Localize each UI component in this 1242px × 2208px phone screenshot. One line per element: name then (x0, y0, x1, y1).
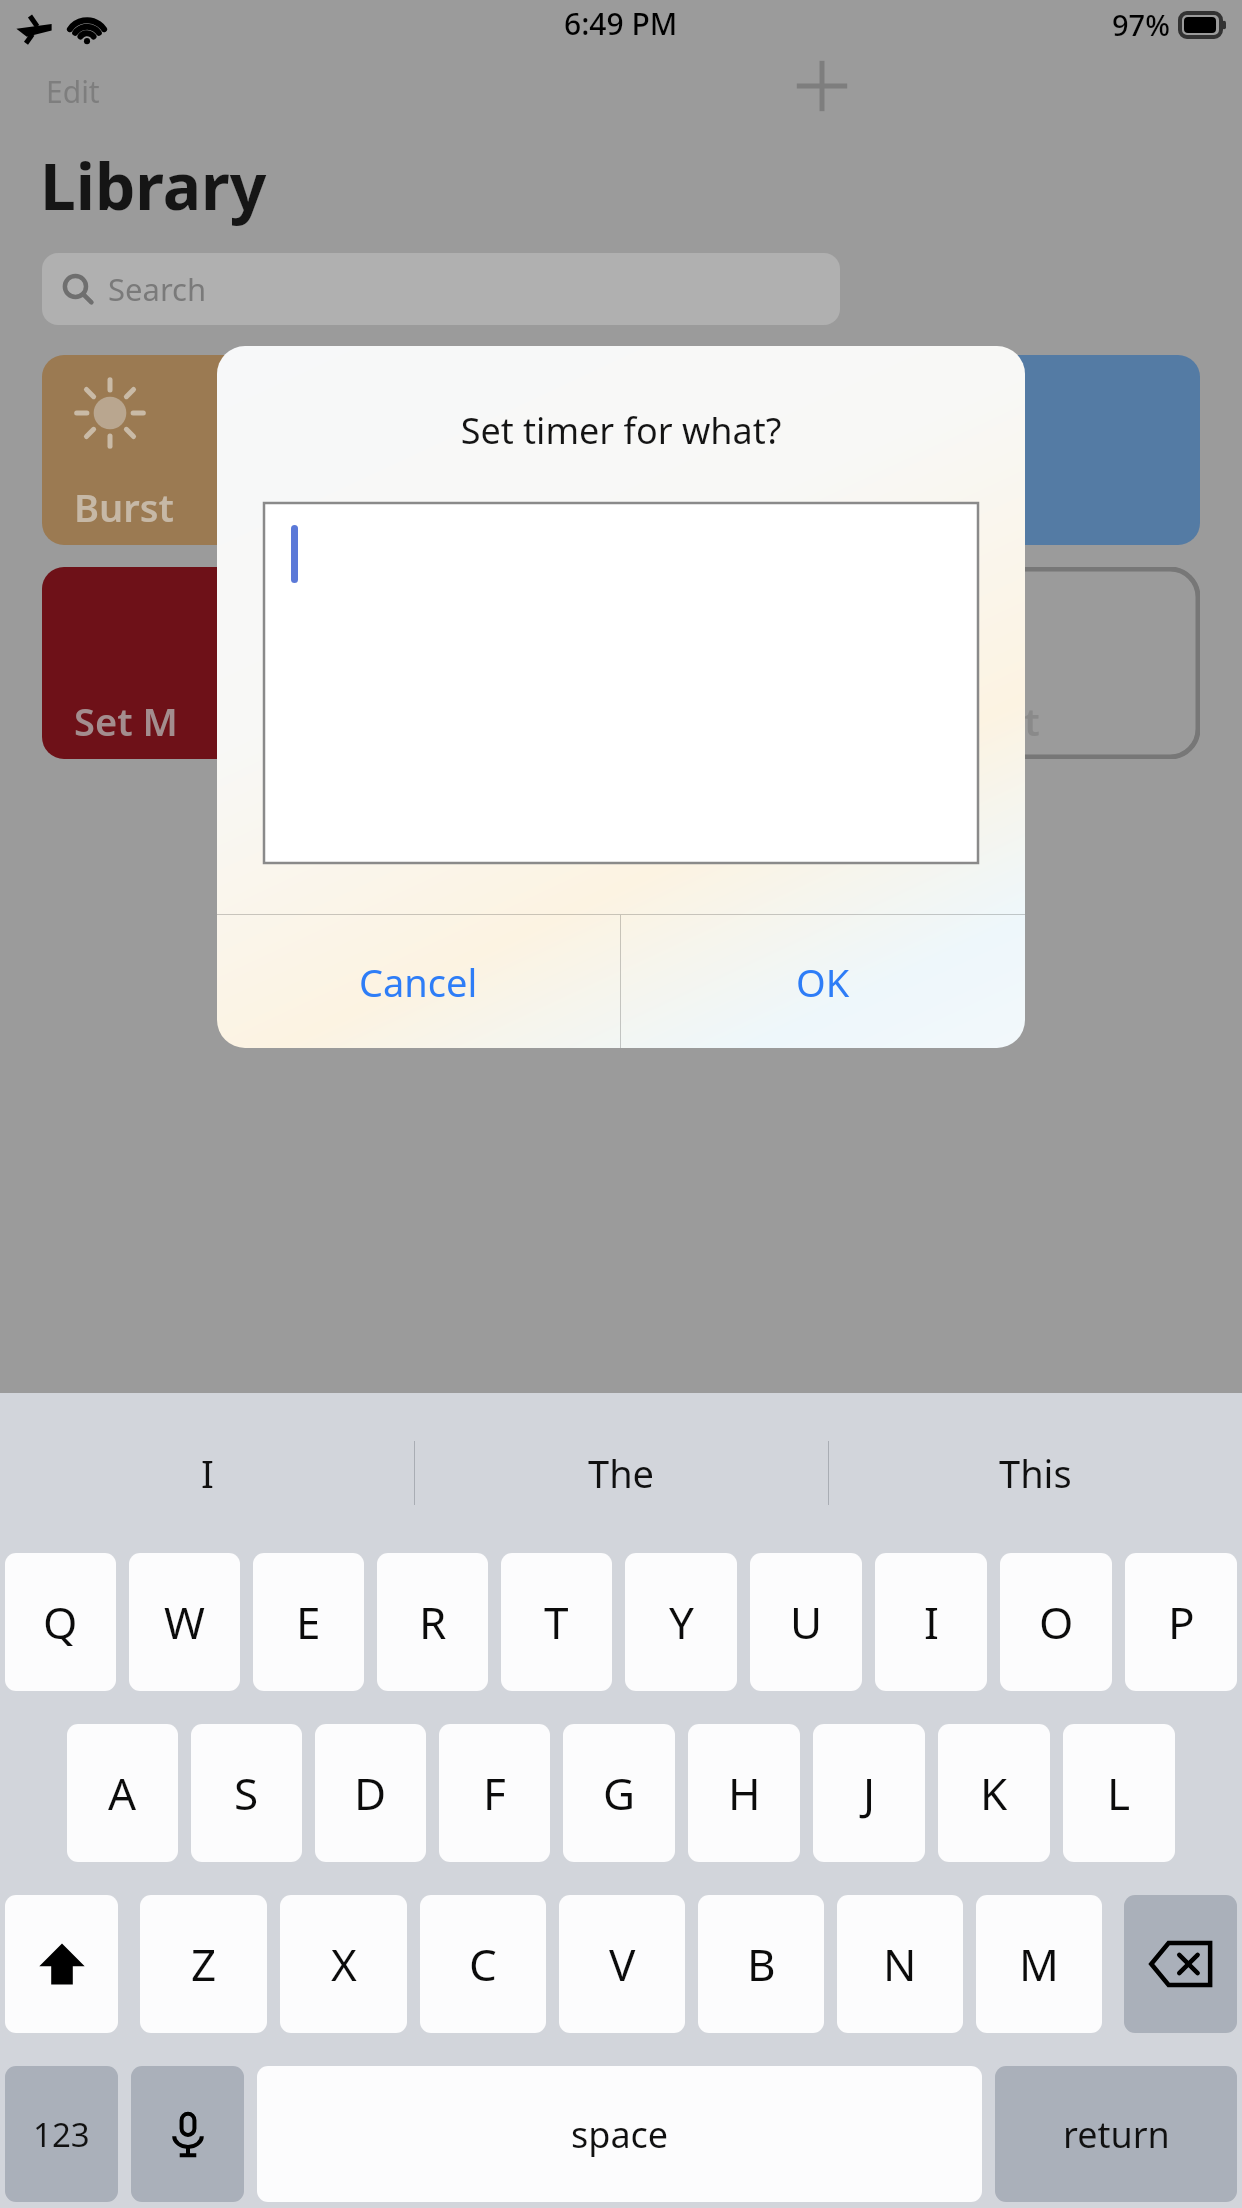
button[interactable]: L (1063, 1724, 1175, 1862)
staticText: return (1063, 2110, 1170, 2159)
staticText: V (609, 1934, 636, 1994)
staticText: A (108, 1763, 137, 1823)
button[interactable]: G (563, 1724, 675, 1862)
staticText: Set M (74, 695, 178, 747)
staticText: K (980, 1763, 1008, 1823)
button[interactable]: J (813, 1724, 925, 1862)
button[interactable]: Burst (42, 355, 442, 545)
staticText: 123 (33, 2112, 90, 2157)
staticText: 97% (1112, 5, 1170, 44)
staticText: R (419, 1592, 447, 1652)
staticText: P (1168, 1592, 1195, 1652)
button[interactable]: X (280, 1895, 407, 2033)
staticText: The (588, 1447, 655, 1499)
button[interactable]: I (0, 1393, 414, 1553)
button[interactable] (264, 503, 978, 863)
button[interactable]: M (976, 1895, 1102, 2033)
staticText: Edit (46, 71, 100, 112)
staticText: Q (43, 1592, 78, 1652)
button[interactable]: Edit (42, 67, 104, 116)
button[interactable]: ut (640, 567, 1200, 759)
button[interactable]: Shift (5, 1895, 118, 2033)
button[interactable]: E (253, 1553, 364, 1691)
button[interactable]: B (698, 1895, 824, 2033)
staticText: C (469, 1934, 497, 1994)
staticText: E (296, 1592, 321, 1652)
button[interactable]: S (191, 1724, 302, 1862)
button[interactable]: C (420, 1895, 546, 2033)
staticText: Burst (74, 481, 174, 533)
staticText: O (1039, 1592, 1074, 1652)
button[interactable]: return (995, 2066, 1237, 2202)
staticText: OK (796, 956, 850, 1008)
button[interactable]: N (837, 1895, 963, 2033)
staticText: Library (40, 142, 267, 229)
staticText: T (544, 1592, 569, 1652)
button[interactable]: T (501, 1553, 612, 1691)
staticText: L (1107, 1763, 1131, 1823)
staticText: X (331, 1934, 357, 1994)
staticText: ut (1000, 695, 1040, 747)
staticText: Y (669, 1592, 694, 1652)
button[interactable]: Cancel (217, 915, 620, 1048)
staticText: N (883, 1934, 917, 1994)
staticText: Set timer for what? (217, 406, 1025, 455)
button[interactable]: V (559, 1895, 685, 2033)
staticText: W (164, 1592, 205, 1652)
button[interactable]: D (315, 1724, 426, 1862)
button[interactable]: 123 (5, 2066, 118, 2202)
button[interactable]: R (377, 1553, 488, 1691)
staticText: Z (191, 1934, 217, 1994)
button[interactable]: The (415, 1393, 828, 1553)
button[interactable]: Z (140, 1895, 267, 2033)
button[interactable]: space (257, 2066, 982, 2202)
button[interactable]: Dictate (131, 2066, 244, 2202)
staticText: Cancel (359, 956, 478, 1008)
button[interactable]: P (1125, 1553, 1237, 1691)
staticText: U (790, 1592, 823, 1652)
staticText: G (603, 1763, 636, 1823)
button[interactable]: I (875, 1553, 987, 1691)
button[interactable]: F (439, 1724, 550, 1862)
button[interactable]: This (829, 1393, 1242, 1553)
button[interactable]: A (67, 1724, 178, 1862)
button[interactable]: Set M (42, 567, 600, 759)
staticText: This (999, 1447, 1072, 1499)
button[interactable]: Add (792, 56, 852, 116)
button[interactable]: Q (5, 1553, 116, 1691)
button[interactable] (800, 355, 1200, 545)
staticText: D (354, 1763, 387, 1823)
staticText: B (747, 1934, 776, 1994)
staticText: F (483, 1763, 506, 1823)
button[interactable]: O (1000, 1553, 1112, 1691)
button[interactable]: K (938, 1724, 1050, 1862)
staticText: I (924, 1592, 939, 1652)
button[interactable]: W (129, 1553, 240, 1691)
staticText: M (1019, 1934, 1059, 1994)
staticText: space (571, 2110, 669, 2159)
button[interactable]: Backspace (1124, 1895, 1237, 2033)
staticText: J (863, 1763, 876, 1823)
staticText: 6:49 PM (564, 3, 678, 44)
button[interactable]: Y (625, 1553, 737, 1691)
button[interactable]: H (688, 1724, 800, 1862)
button[interactable]: U (750, 1553, 862, 1691)
button[interactable]: Search (42, 253, 840, 325)
staticText: S (234, 1763, 259, 1823)
staticText: I (201, 1447, 214, 1499)
staticText: Search (108, 268, 207, 310)
staticText: H (728, 1763, 761, 1823)
button[interactable]: OK (621, 915, 1025, 1048)
